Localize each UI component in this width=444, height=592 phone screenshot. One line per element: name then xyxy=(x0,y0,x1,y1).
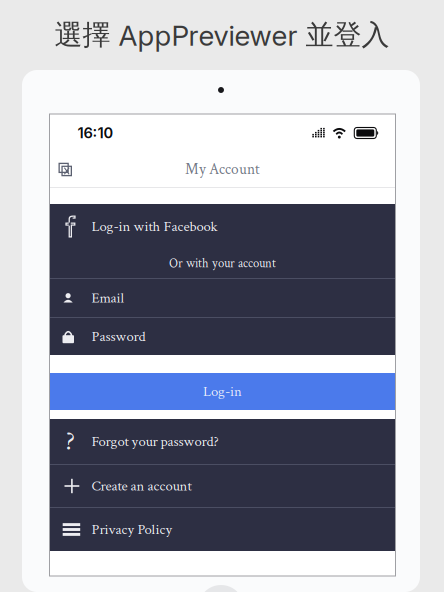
staticText: 16:10 xyxy=(77,124,113,142)
button[interactable]: Log-in with Facebook xyxy=(49,204,395,249)
button[interactable]: Forgot your password? xyxy=(49,419,395,464)
button[interactable]: Email xyxy=(49,279,395,317)
staticText: ? xyxy=(65,424,75,459)
button[interactable]: Password xyxy=(49,318,395,355)
staticText: Forgot your password? xyxy=(91,432,218,451)
staticText: My Account xyxy=(185,159,260,179)
staticText: Log-in with Facebook xyxy=(91,217,217,236)
staticText: Email xyxy=(91,288,124,308)
button[interactable]: Privacy Policy xyxy=(49,508,395,551)
button[interactable]: Log-in xyxy=(49,373,395,410)
staticText: Log-in xyxy=(203,382,242,401)
staticText: Password xyxy=(91,327,145,346)
staticText: Privacy Policy xyxy=(91,520,172,539)
staticText: Or with your account xyxy=(169,255,276,272)
button[interactable]: Close xyxy=(49,154,82,185)
staticText: 選擇 AppPreviewer 並登入 xyxy=(54,17,389,53)
staticText: Create an account xyxy=(91,476,191,496)
button[interactable]: Create an account xyxy=(49,465,395,507)
